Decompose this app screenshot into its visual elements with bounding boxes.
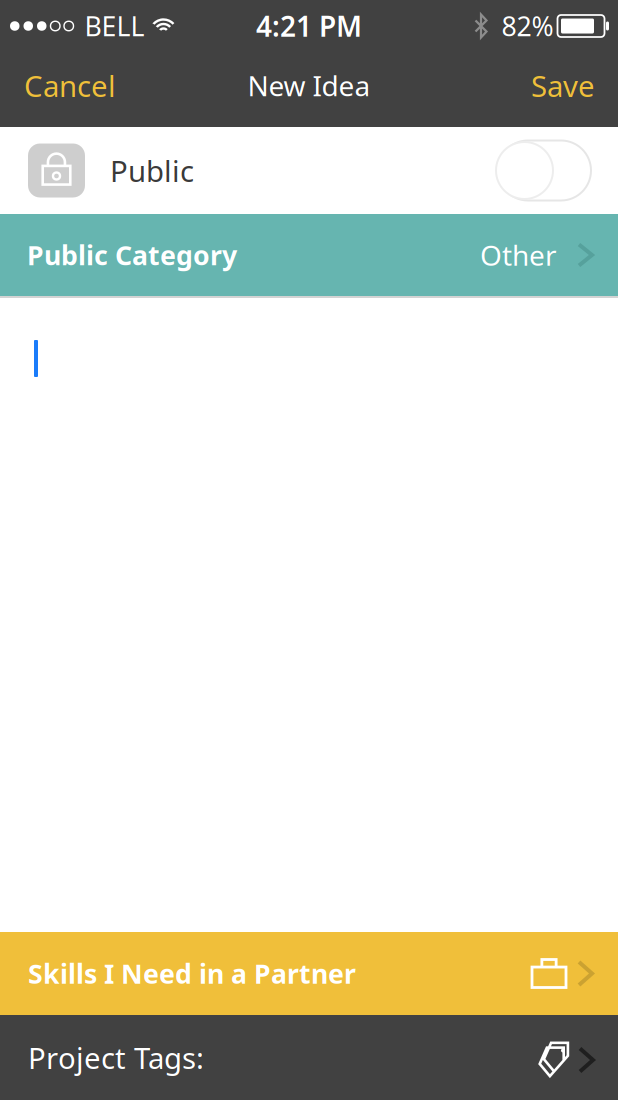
staticText: Cancel <box>24 66 116 105</box>
staticText: 82% <box>501 8 553 44</box>
staticText: 4:21 PM <box>256 7 362 45</box>
staticText: Public <box>110 151 194 190</box>
button[interactable]: Skills I Need in a Partner <box>0 932 618 1015</box>
button[interactable]: Cancel <box>0 52 140 119</box>
staticText: New Idea <box>247 67 370 104</box>
button[interactable]: Project Tags: <box>0 1015 618 1100</box>
staticText: Save <box>531 66 595 105</box>
staticText: Public Category <box>27 237 237 273</box>
button[interactable]: Public Category <box>0 214 618 296</box>
button[interactable]: Save <box>508 52 618 119</box>
staticText: Other <box>480 236 557 274</box>
staticText: BELL <box>84 8 144 44</box>
button[interactable]: Idea description <box>0 298 618 932</box>
staticText: Project Tags: <box>28 1038 204 1077</box>
staticText: Skills I Need in a Partner <box>28 956 356 991</box>
button[interactable]: Public <box>496 140 591 200</box>
